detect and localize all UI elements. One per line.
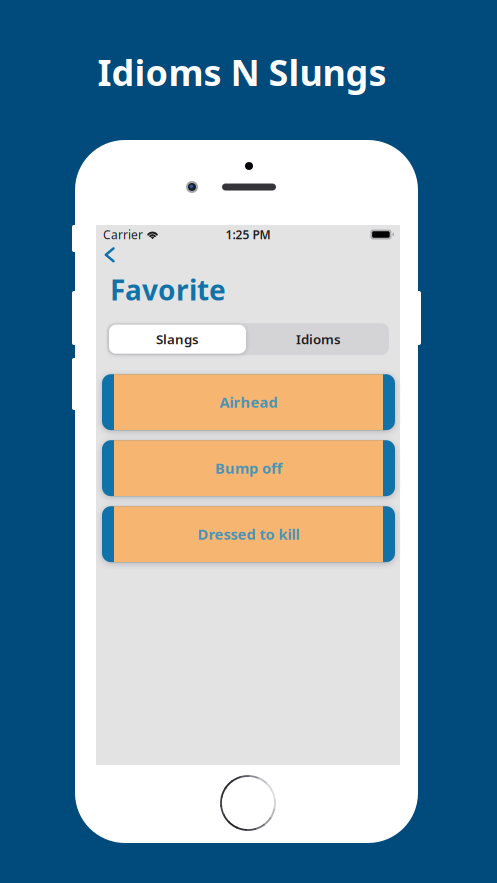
staticText: Dressed to kill [197, 524, 299, 544]
staticText: Favorite [110, 271, 226, 308]
staticText: Idioms [296, 330, 341, 348]
button[interactable]: Airhead [102, 374, 395, 430]
staticText: Slangs [156, 330, 199, 348]
staticText: Carrier [103, 226, 143, 242]
button[interactable]: Bump off [102, 440, 395, 496]
button[interactable]: Back [96, 244, 152, 270]
staticText: Airhead [219, 392, 277, 412]
staticText: Idioms N Slungs [97, 48, 386, 96]
staticText: 1:25 PM [225, 226, 270, 242]
button[interactable]: Slangs [107, 323, 248, 355]
button[interactable]: Idioms [248, 323, 389, 355]
staticText: Bump off [215, 458, 282, 478]
button[interactable]: Dressed to kill [102, 506, 395, 562]
